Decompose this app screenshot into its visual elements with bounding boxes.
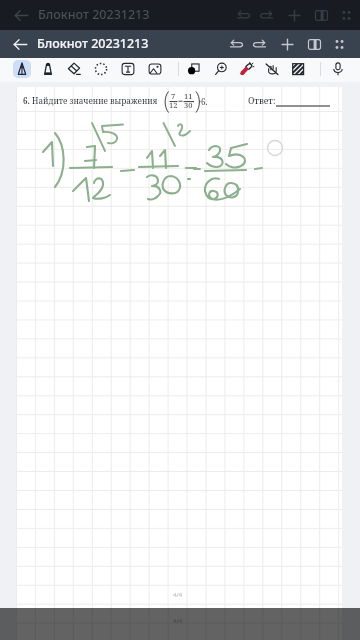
- button[interactable]: Zoom: [212, 60, 230, 78]
- button[interactable]: Redo: [246, 32, 272, 56]
- staticText: Найдите значение выражения: [32, 95, 158, 106]
- button[interactable]: Palm rejection: [263, 60, 281, 78]
- staticText: ·6.: [199, 96, 208, 107]
- button[interactable]: Insert image: [146, 60, 164, 78]
- button[interactable]: More options: [326, 32, 352, 56]
- staticText: 30: [184, 100, 193, 110]
- staticText: 7: [171, 91, 176, 101]
- button[interactable]: Colour: [185, 60, 203, 78]
- staticText: Блокнот 20231213: [37, 35, 149, 52]
- staticText: 4/4: [173, 617, 183, 625]
- staticText: 12: [169, 100, 178, 110]
- staticText: 6.: [23, 95, 30, 106]
- button[interactable]: Highlighter: [238, 60, 256, 78]
- button[interactable]: Background pattern: [289, 60, 307, 78]
- button[interactable]: Back: [9, 33, 31, 55]
- button[interactable]: Eraser: [65, 60, 83, 78]
- button[interactable]: Undo: [223, 32, 249, 56]
- staticText: Блокнот 20231213: [38, 6, 150, 23]
- button[interactable]: Page view: [301, 32, 327, 56]
- button[interactable]: Voice note: [329, 60, 347, 78]
- button[interactable]: Lasso select: [92, 60, 110, 78]
- button[interactable]: Pencil: [39, 60, 57, 78]
- button[interactable]: Add page: [274, 32, 300, 56]
- staticText: Ответ:: [248, 95, 276, 107]
- button[interactable]: Text box: [119, 60, 137, 78]
- staticText: 11: [184, 91, 193, 101]
- staticText: 4/4: [173, 591, 183, 599]
- button[interactable]: Pen: [13, 60, 31, 78]
